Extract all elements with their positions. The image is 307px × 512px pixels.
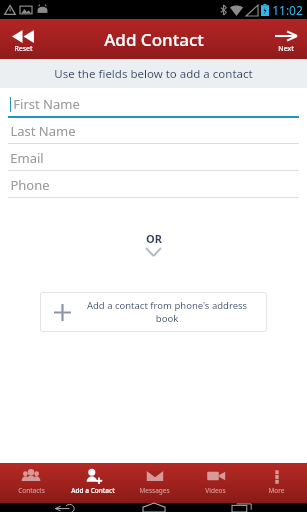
staticText: Next (278, 44, 294, 54)
other: Next (275, 29, 297, 43)
button[interactable]: Email (0, 145, 307, 172)
staticText: Videos (205, 486, 226, 495)
button[interactable]: Add a contact from phone's address book (40, 292, 267, 332)
button[interactable]: Back (42, 503, 88, 512)
button[interactable]: Next (265, 19, 307, 59)
button[interactable]: First Name (0, 91, 307, 118)
button[interactable]: Contacts (0, 463, 62, 503)
button[interactable]: Phone (0, 172, 307, 199)
button[interactable]: Reset (0, 19, 46, 59)
button[interactable]: Last Name (0, 118, 307, 145)
staticText: Last Name (10, 122, 76, 140)
staticText: Reset (14, 44, 33, 54)
staticText: Messages (139, 486, 170, 495)
staticText: First Name (13, 95, 80, 113)
button[interactable]: Home (131, 503, 177, 512)
button[interactable]: Videos (185, 463, 246, 503)
other: Reset (12, 30, 34, 43)
staticText: OR (146, 231, 162, 246)
button[interactable]: Recent apps (219, 503, 265, 512)
staticText: More (268, 486, 285, 495)
button[interactable]: Add a Contact (62, 463, 124, 503)
staticText: Add a Contact (71, 486, 115, 495)
staticText: Add a contact from phone's address book (81, 299, 253, 325)
staticText: Contacts (18, 486, 45, 495)
staticText: Email (10, 149, 44, 167)
staticText: Phone (10, 176, 50, 194)
button[interactable]: Messages (124, 463, 185, 503)
staticText: 11:02 (272, 2, 303, 18)
staticText: Use the fields below to add a contact (54, 66, 253, 82)
staticText: Add Contact (104, 28, 204, 51)
button[interactable]: More (246, 463, 307, 503)
